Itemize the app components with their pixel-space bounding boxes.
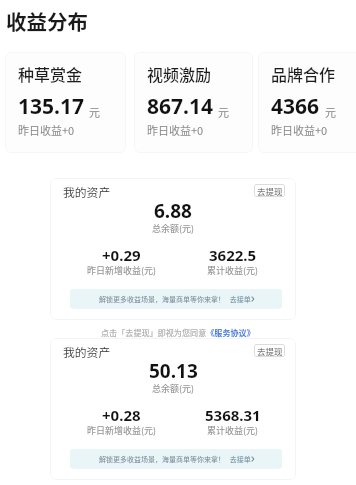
- staticText: 种草赏金: [18, 62, 83, 85]
- staticText: 867.14: [147, 92, 213, 121]
- button[interactable]: 视频激励: [134, 52, 253, 153]
- staticText: 昨日新增收益(元): [87, 424, 157, 437]
- staticText: 5368.31: [205, 405, 261, 425]
- staticText: 50.13: [149, 358, 198, 384]
- button[interactable]: 解锁更多收益场景，海量商单等你来拿！ 去接单: [70, 289, 282, 309]
- button[interactable]: 去提现: [254, 184, 285, 197]
- staticText: 总余额(元): [152, 382, 195, 395]
- button[interactable]: 种草赏金: [5, 52, 126, 153]
- staticText: +0.29: [102, 245, 141, 265]
- staticText: +0.28: [102, 405, 141, 425]
- staticText: 累计收益(元): [207, 424, 259, 437]
- staticText: 6.88: [154, 198, 192, 224]
- staticText: 元: [218, 104, 229, 120]
- staticText: 品牌合作: [271, 62, 336, 85]
- staticText: 解锁更多收益场景，海量商单等你来拿！ 去接单: [99, 294, 253, 304]
- staticText: 点击「去提现」即视为您同意《服务协议》: [101, 327, 255, 339]
- staticText: 昨日新增收益(元): [87, 264, 157, 277]
- staticText: 元: [325, 104, 336, 120]
- staticText: 视频激励: [147, 62, 212, 85]
- staticText: 昨日收益+0: [271, 122, 328, 138]
- button[interactable]: 去提现: [254, 344, 285, 357]
- staticText: 解锁更多收益场景，海量商单等你来拿！ 去接单: [99, 454, 253, 464]
- staticText: 我的资产: [63, 183, 111, 200]
- staticText: 4366: [271, 92, 320, 121]
- staticText: 昨日收益+0: [147, 122, 204, 138]
- staticText: 135.17: [18, 92, 84, 121]
- staticText: 元: [89, 104, 100, 120]
- staticText: 收益分布: [6, 6, 88, 36]
- staticText: 3622.5: [209, 245, 257, 265]
- staticText: 总余额(元): [152, 222, 195, 235]
- staticText: 我的资产: [63, 343, 111, 360]
- staticText: 累计收益(元): [207, 264, 259, 277]
- staticText: 昨日收益+0: [18, 122, 75, 138]
- staticText: 去提现: [257, 345, 283, 357]
- button[interactable]: 解锁更多收益场景，海量商单等你来拿！ 去接单: [70, 449, 282, 469]
- staticText: 去提现: [257, 185, 283, 197]
- button[interactable]: 品牌合作: [258, 52, 356, 153]
